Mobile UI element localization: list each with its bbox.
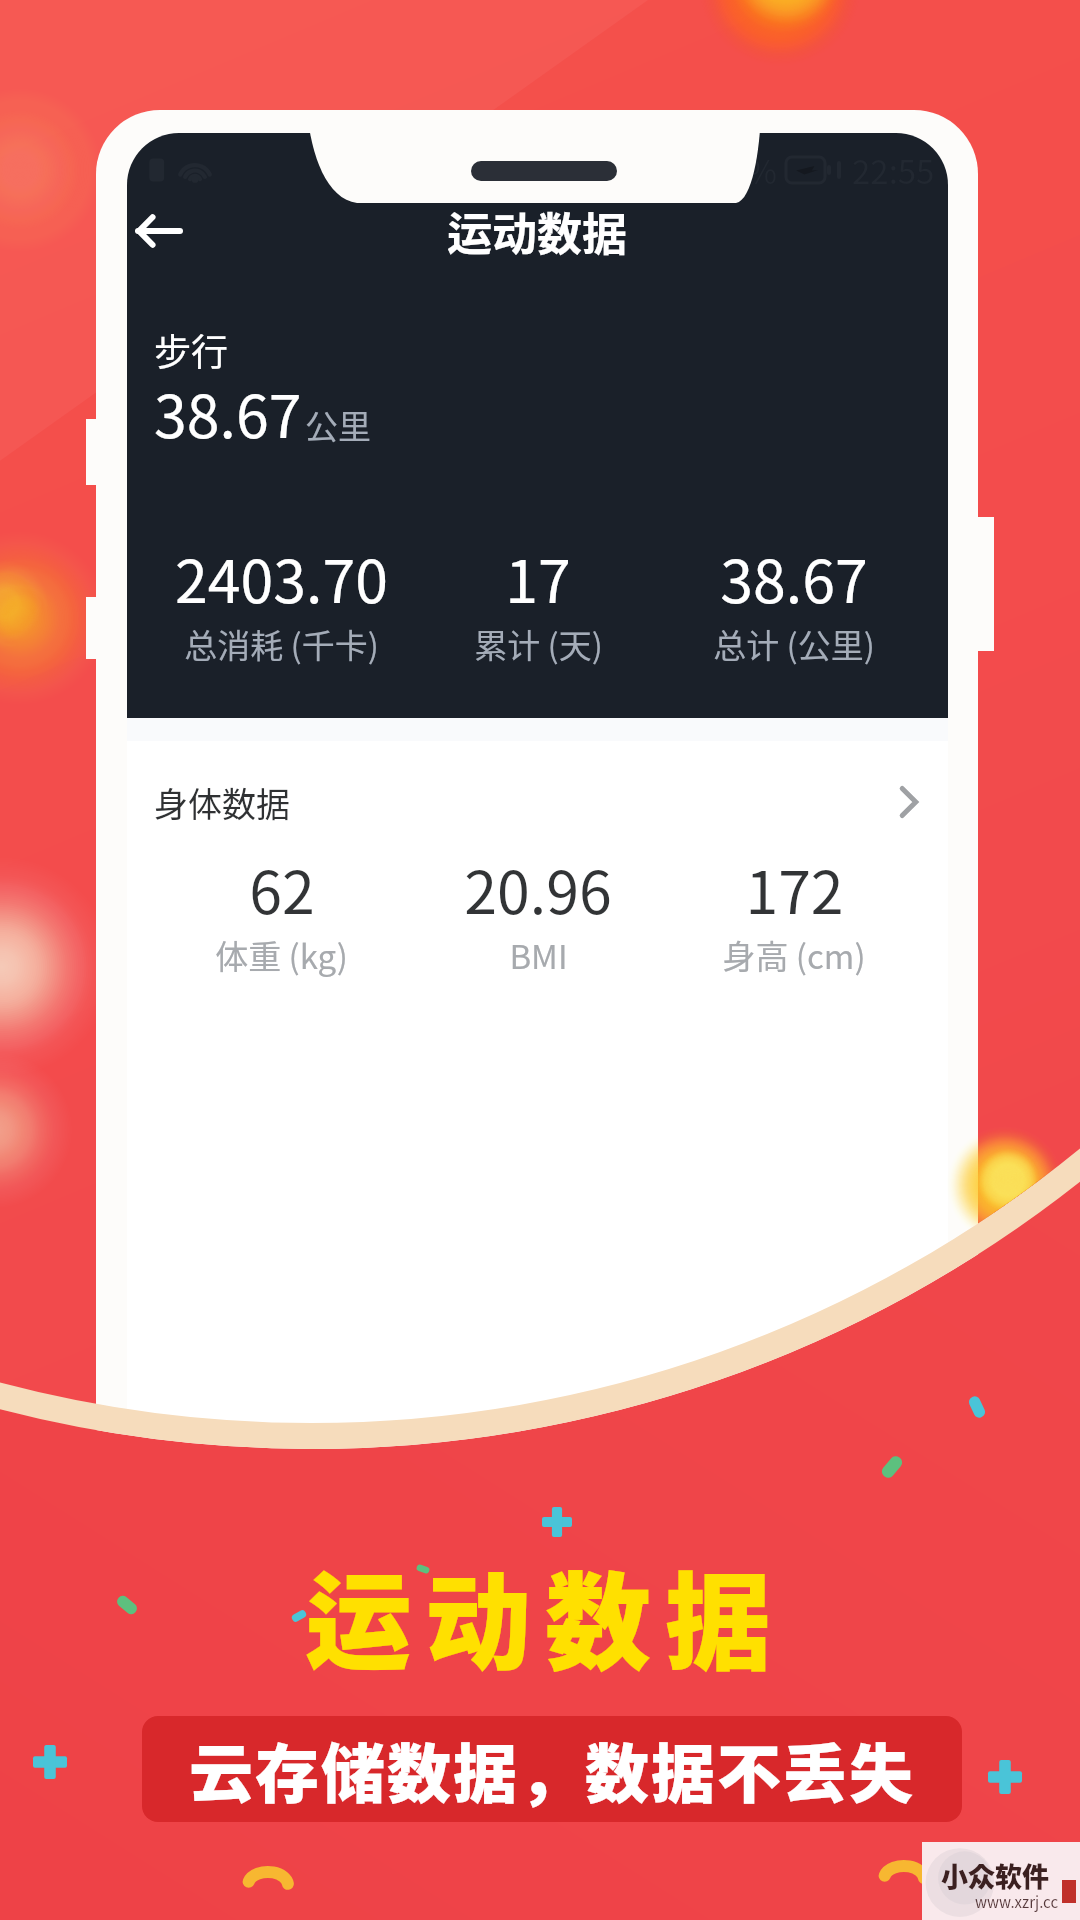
staticText: 22:55: [852, 146, 935, 194]
staticText: BMI: [509, 931, 568, 979]
staticText: 累计 (天): [474, 620, 603, 668]
staticText: 运动数据: [305, 1538, 785, 1688]
staticText: 38.67: [720, 535, 868, 620]
staticText: www.xzrj.cc: [975, 1891, 1059, 1913]
staticText: 公里: [305, 401, 371, 449]
staticText: 88%: [712, 147, 777, 193]
staticText: 步行: [154, 323, 228, 377]
staticText: 38.67: [154, 370, 302, 455]
staticText: 20.96: [464, 846, 612, 931]
staticText: 17: [505, 535, 571, 620]
button[interactable]: 云存储数据，数据不丢失: [142, 1716, 962, 1822]
staticText: 小众软件: [941, 1856, 1049, 1895]
staticText: 总计 (公里): [713, 620, 875, 668]
staticText: 身体数据: [154, 778, 290, 827]
staticText: 62: [249, 846, 315, 931]
button[interactable]: 身体数据: [127, 741, 948, 863]
staticText: 总消耗 (千卡): [184, 620, 379, 668]
staticText: 2403.70: [175, 535, 388, 620]
staticText: 云存储数据，数据不丢失: [189, 1723, 915, 1816]
button[interactable]: Back: [127, 182, 191, 280]
staticText: 体重 (kg): [215, 931, 348, 979]
staticText: 身高 (cm): [722, 931, 866, 979]
staticText: 运动数据: [447, 199, 628, 264]
staticText: 172: [745, 846, 844, 931]
